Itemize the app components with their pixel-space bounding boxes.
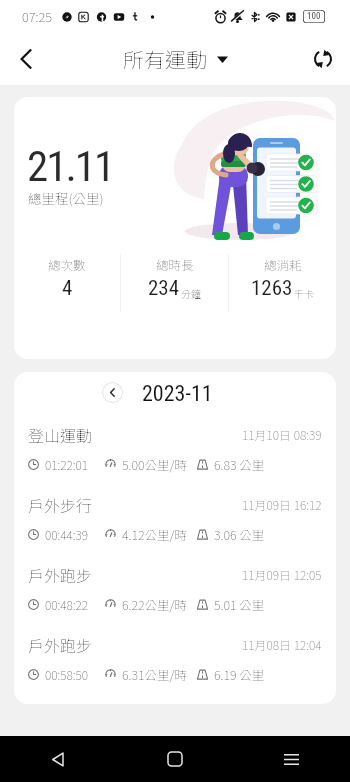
button[interactable]: Refresh: [303, 39, 343, 79]
staticText: 戶外跑步: [28, 633, 93, 656]
staticText: 6.22公里/時: [122, 595, 187, 613]
staticText: 6.83 公里: [214, 455, 265, 473]
staticText: 總次數: [48, 255, 86, 273]
staticText: 總里程(公里): [28, 188, 104, 208]
button[interactable]: 戶外步行: [14, 483, 336, 553]
button[interactable]: Home: [116, 736, 233, 782]
button[interactable]: 所有運動: [117, 40, 234, 78]
button[interactable]: Back: [0, 736, 116, 782]
button[interactable]: Previous month: [102, 382, 123, 403]
staticText: 2023-11: [142, 381, 213, 407]
staticText: 登山運動: [28, 423, 93, 446]
staticText: 4.12公里/時: [122, 525, 187, 543]
button[interactable]: 總時長: [121, 255, 228, 301]
staticText: 5.01 公里: [214, 595, 265, 613]
staticText: 00:44:39: [45, 526, 89, 543]
staticText: 00:48:22: [45, 596, 89, 613]
staticText: 100: [307, 11, 321, 22]
staticText: 1263: [251, 276, 293, 301]
staticText: 11月08日 12:04: [242, 636, 322, 653]
button[interactable]: 戶外跑步: [14, 623, 336, 693]
staticText: 所有運動: [123, 44, 207, 74]
staticText: 01:22:01: [45, 456, 89, 473]
staticText: 6.31公里/時: [122, 665, 187, 683]
staticText: 戶外跑步: [28, 563, 93, 586]
staticText: 11月10日 08:39: [242, 426, 322, 443]
button[interactable]: Back: [6, 39, 46, 79]
staticText: 11月09日 16:12: [242, 496, 322, 513]
staticText: 總時長: [156, 255, 194, 273]
staticText: 21.11: [27, 141, 114, 191]
staticText: 11月09日 12:05: [242, 566, 322, 583]
button[interactable]: 登山運動: [14, 413, 336, 483]
button[interactable]: 總次數: [14, 255, 120, 301]
staticText: 3.06 公里: [214, 525, 265, 543]
button[interactable]: Recent apps: [233, 736, 350, 782]
staticText: 00:58:50: [45, 666, 89, 683]
staticText: 總消耗: [264, 255, 302, 273]
staticText: 戶外步行: [28, 493, 93, 516]
staticText: 07:25: [22, 7, 53, 26]
staticText: 分鐘: [181, 286, 201, 300]
button[interactable]: Battery 100 percent: [303, 10, 325, 23]
button[interactable]: 總消耗: [229, 255, 336, 301]
staticText: 千卡: [294, 286, 314, 300]
button[interactable]: 戶外跑步: [14, 553, 336, 623]
staticText: 4: [62, 276, 73, 301]
staticText: 234: [148, 276, 180, 301]
staticText: 6.19 公里: [214, 665, 265, 683]
staticText: 5.00公里/時: [122, 455, 187, 473]
